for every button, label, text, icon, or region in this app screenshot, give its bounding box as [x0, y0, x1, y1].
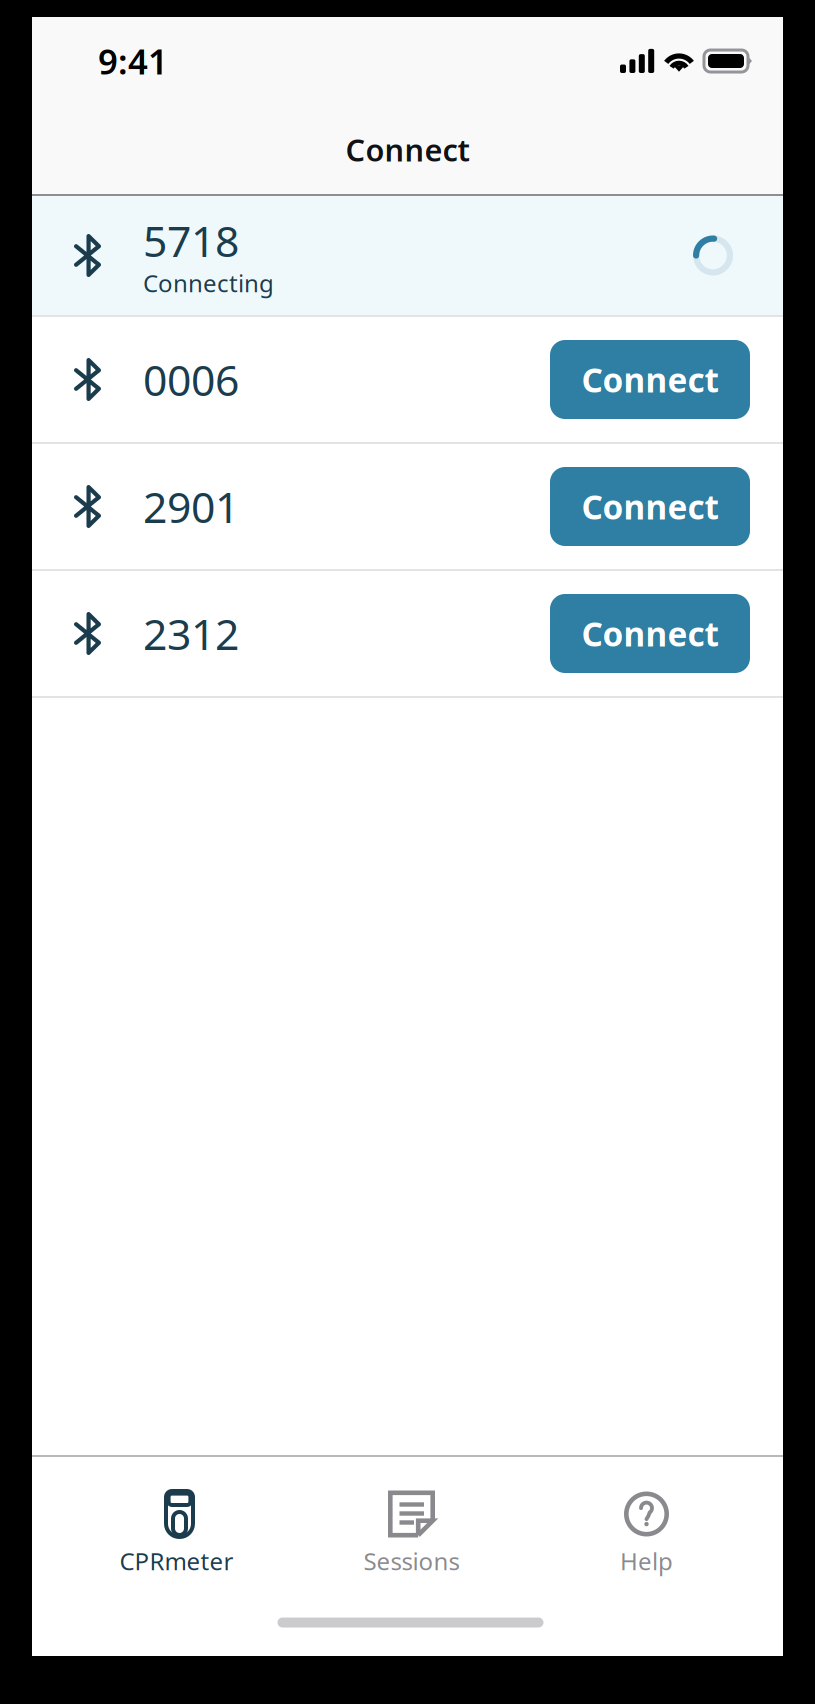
button[interactable]: 2312	[32, 571, 783, 696]
staticText: CPRmeter	[119, 1545, 233, 1577]
staticText: Connect	[581, 484, 718, 529]
button[interactable]: Sessions	[294, 1457, 529, 1599]
staticText: Connecting	[143, 267, 274, 299]
staticText: Help	[620, 1545, 673, 1577]
staticText: Sessions	[363, 1545, 459, 1577]
button[interactable]: 2901	[32, 444, 783, 569]
staticText: 0006	[143, 351, 239, 408]
staticText: Connect	[581, 357, 718, 402]
staticText: Connect	[345, 129, 469, 170]
staticText: Connect	[581, 611, 718, 656]
button[interactable]: Help	[529, 1457, 764, 1599]
staticText: 9:41	[98, 38, 168, 84]
staticText: 2901	[143, 478, 239, 535]
staticText: 5718	[143, 212, 239, 269]
button[interactable]: 0006	[32, 317, 783, 442]
button[interactable]: CPRmeter	[59, 1457, 294, 1599]
button[interactable]: 5718	[32, 196, 783, 315]
staticText: 2312	[143, 605, 239, 662]
